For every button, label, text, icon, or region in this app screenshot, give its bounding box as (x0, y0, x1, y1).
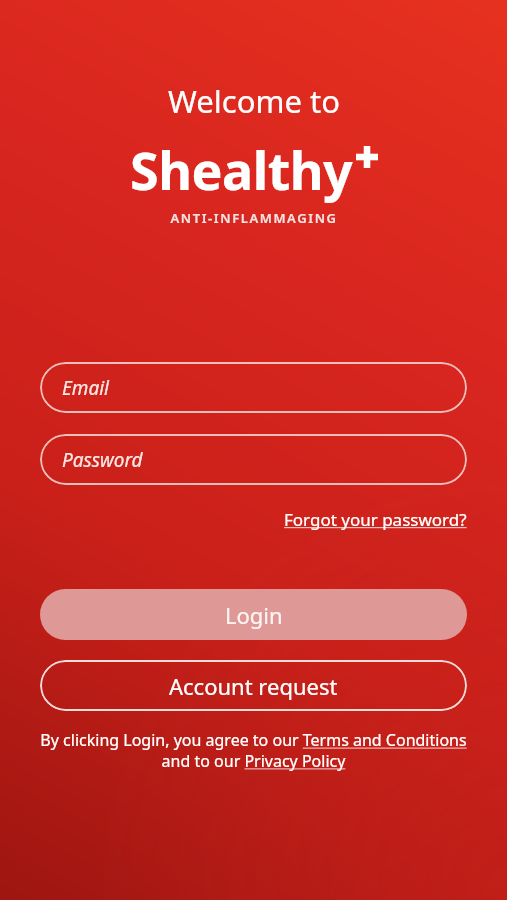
button[interactable]: Account request (40, 660, 467, 711)
staticText: Login (225, 600, 283, 630)
button[interactable]: Email (40, 362, 467, 413)
staticText: Password (62, 447, 143, 473)
staticText: Welcome to (168, 80, 340, 122)
staticText: Email (62, 375, 109, 401)
staticText: Shealthy (130, 134, 353, 205)
staticText: By clicking Login, you agree to our Term… (40, 729, 467, 772)
staticText: Account request (169, 671, 338, 701)
staticText: ANTI-INFLAMMAGING (170, 209, 338, 227)
button[interactable]: Login (40, 589, 467, 640)
staticText: Forgot your password? (284, 508, 467, 531)
button[interactable]: Password (40, 434, 467, 485)
button[interactable]: Forgot your password? (284, 506, 467, 533)
button[interactable]: By clicking Login, you agree to our Term… (40, 729, 467, 772)
